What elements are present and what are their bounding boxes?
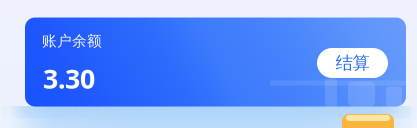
staticText: 结算 — [335, 52, 369, 74]
staticText: 账户余额 — [42, 32, 102, 50]
button[interactable]: 结算 — [317, 48, 388, 78]
staticText: 3.30 — [43, 61, 95, 96]
